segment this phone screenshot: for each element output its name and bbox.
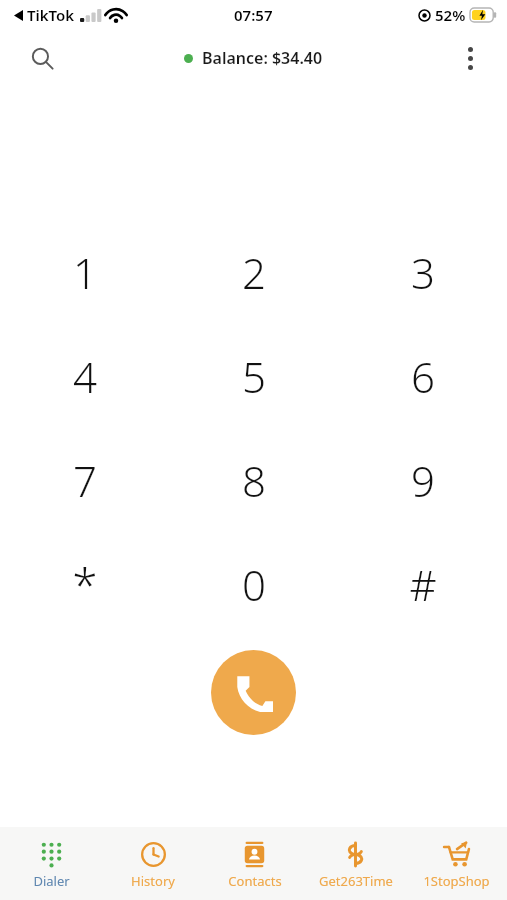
- staticText: Dialer: [33, 872, 70, 890]
- button[interactable]: Balance: $34.40: [176, 41, 331, 75]
- button[interactable]: 2: [169, 220, 338, 324]
- button[interactable]: Search: [22, 38, 62, 78]
- button[interactable]: #: [338, 532, 507, 636]
- button[interactable]: 7: [0, 428, 169, 532]
- staticText: 0: [242, 556, 266, 613]
- button[interactable]: Dialer: [0, 827, 102, 900]
- button[interactable]: More options: [450, 38, 490, 78]
- button[interactable]: Contacts: [204, 827, 305, 900]
- staticText: #: [409, 556, 437, 613]
- button[interactable]: *: [0, 532, 169, 636]
- staticText: History: [131, 872, 175, 890]
- button[interactable]: 1StopShop: [406, 827, 507, 900]
- button[interactable]: 1: [0, 220, 169, 324]
- staticText: 1StopShop: [423, 872, 490, 890]
- staticText: 3: [411, 244, 435, 301]
- button[interactable]: Call: [211, 650, 296, 735]
- staticText: TikTok: [27, 5, 75, 25]
- staticText: Get263Time: [319, 872, 393, 890]
- button[interactable]: 9: [338, 428, 507, 532]
- button[interactable]: 4: [0, 324, 169, 428]
- button[interactable]: 6: [338, 324, 507, 428]
- staticText: 1: [73, 244, 97, 301]
- button[interactable]: 8: [169, 428, 338, 532]
- staticText: Contacts: [228, 872, 282, 890]
- button[interactable]: 3: [338, 220, 507, 324]
- staticText: 7: [73, 452, 97, 509]
- staticText: *: [72, 553, 98, 616]
- staticText: Balance: $34.40: [202, 47, 323, 69]
- button[interactable]: 5: [169, 324, 338, 428]
- button[interactable]: Get263Time: [305, 827, 406, 900]
- staticText: 8: [242, 452, 266, 509]
- staticText: 4: [73, 348, 97, 405]
- button[interactable]: History: [102, 827, 204, 900]
- staticText: 9: [411, 452, 435, 509]
- staticText: 6: [411, 348, 435, 405]
- staticText: 52%: [435, 5, 466, 25]
- button[interactable]: 0: [169, 532, 338, 636]
- staticText: 5: [242, 348, 266, 405]
- staticText: 07:57: [234, 5, 273, 25]
- staticText: 2: [242, 244, 266, 301]
